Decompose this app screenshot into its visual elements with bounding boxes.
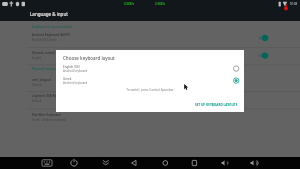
button[interactable]: SET UP KEYBOARD LAYOUTS xyxy=(192,100,240,109)
staticText: Physical keyboard xyxy=(32,67,59,71)
button[interactable]: Volume down xyxy=(207,157,235,169)
button[interactable]: Home xyxy=(149,157,177,169)
staticText: English (US) xyxy=(63,65,80,69)
staticText: English xyxy=(32,56,42,60)
button[interactable]: Android Keyboard (AOSP) xyxy=(26,33,258,47)
staticText: Keyboard & input methods xyxy=(32,25,73,29)
button[interactable]: Greek xyxy=(56,76,244,87)
staticText: am1_keypad xyxy=(32,78,51,82)
button[interactable]: English (US) xyxy=(56,64,244,75)
staticText: Android keyboard xyxy=(63,69,88,73)
button[interactable]: Logitech USB Keyboard xyxy=(26,94,258,108)
staticText: SET UP KEYBOARD LAYOUTS xyxy=(195,103,238,107)
staticText: 01:58 xyxy=(290,2,298,6)
staticText: Remote control keyboard xyxy=(32,51,70,55)
button[interactable]: am1_keypad xyxy=(26,78,258,92)
staticText: English (US), Greek xyxy=(32,38,57,42)
button[interactable]: Switch keyboard xyxy=(33,157,61,169)
button[interactable]: Volume up xyxy=(236,157,264,169)
button[interactable]: Rite Wire Keyboard xyxy=(26,113,258,127)
button[interactable]: Power xyxy=(62,157,90,169)
staticText: Rite Wire Keyboard xyxy=(32,113,61,117)
staticText: Language & input xyxy=(30,11,68,17)
staticText: 2.0KB/s xyxy=(155,2,166,6)
button[interactable]: Back xyxy=(120,157,148,169)
button[interactable]: Remote control keyboard xyxy=(26,51,258,65)
staticText: Logitech USB Keyboard xyxy=(32,94,67,98)
staticText: Greek - Android keyboard xyxy=(32,118,66,122)
staticText: Choose keyboard layout xyxy=(63,55,115,61)
button[interactable]: Recents xyxy=(178,157,206,169)
staticText: Android Keyboard (AOSP) xyxy=(32,33,70,37)
staticText: 0.0KB/s xyxy=(124,2,135,6)
staticText: Default xyxy=(32,99,42,103)
staticText: Greek xyxy=(63,77,72,81)
button[interactable]: Expand xyxy=(91,157,119,169)
staticText: Default xyxy=(32,83,42,87)
staticText: To switch, press Control-Spacebar xyxy=(56,88,244,92)
staticText: Android keyboard xyxy=(63,81,88,85)
